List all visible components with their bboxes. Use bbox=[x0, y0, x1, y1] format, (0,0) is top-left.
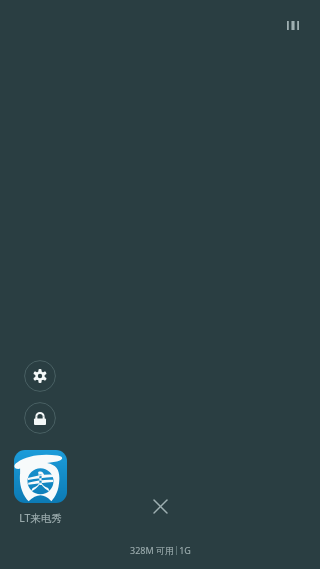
button[interactable]: Settings bbox=[24, 360, 56, 392]
staticText: LT来电秀 bbox=[19, 511, 62, 525]
button[interactable]: LT来电秀 bbox=[8, 450, 72, 525]
staticText: 1G bbox=[179, 544, 191, 556]
button[interactable]: Lock bbox=[24, 402, 56, 434]
button[interactable]: Close all bbox=[144, 490, 176, 522]
staticText: 328M 可用 bbox=[130, 544, 174, 556]
button[interactable]: Recent apps bbox=[281, 13, 305, 37]
